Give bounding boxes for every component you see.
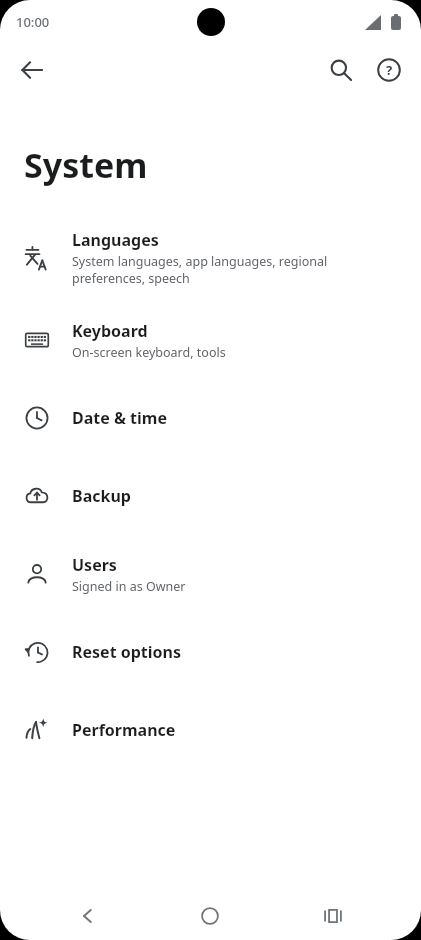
button[interactable]: Back [8,46,56,94]
button[interactable]: Users [0,535,421,613]
staticText: System languages, app languages, regiona… [72,253,328,287]
staticText: Backup [72,485,131,507]
button[interactable]: Home [182,892,238,940]
button[interactable]: Backup [0,457,421,535]
button[interactable]: Search [317,46,365,94]
staticText: Performance [72,719,176,741]
button[interactable]: Recent apps [305,892,361,940]
button[interactable]: Back [60,892,116,940]
button[interactable]: Date & time [0,379,421,457]
button[interactable]: Languages [0,215,421,301]
staticText: Languages [72,229,159,251]
staticText: On-screen keyboard, tools [72,344,226,361]
button[interactable]: Reset options [0,613,421,691]
staticText: System [24,142,148,188]
staticText: Users [72,554,117,576]
button[interactable]: Help [365,46,413,94]
staticText: ? [386,61,393,79]
staticText: 10:00 [16,13,50,31]
staticText: Signed in as Owner [72,578,186,595]
button[interactable]: Keyboard [0,301,421,379]
button[interactable]: Performance [0,691,421,769]
staticText: Date & time [72,407,167,429]
staticText: Reset options [72,641,182,663]
staticText: Keyboard [72,320,148,342]
